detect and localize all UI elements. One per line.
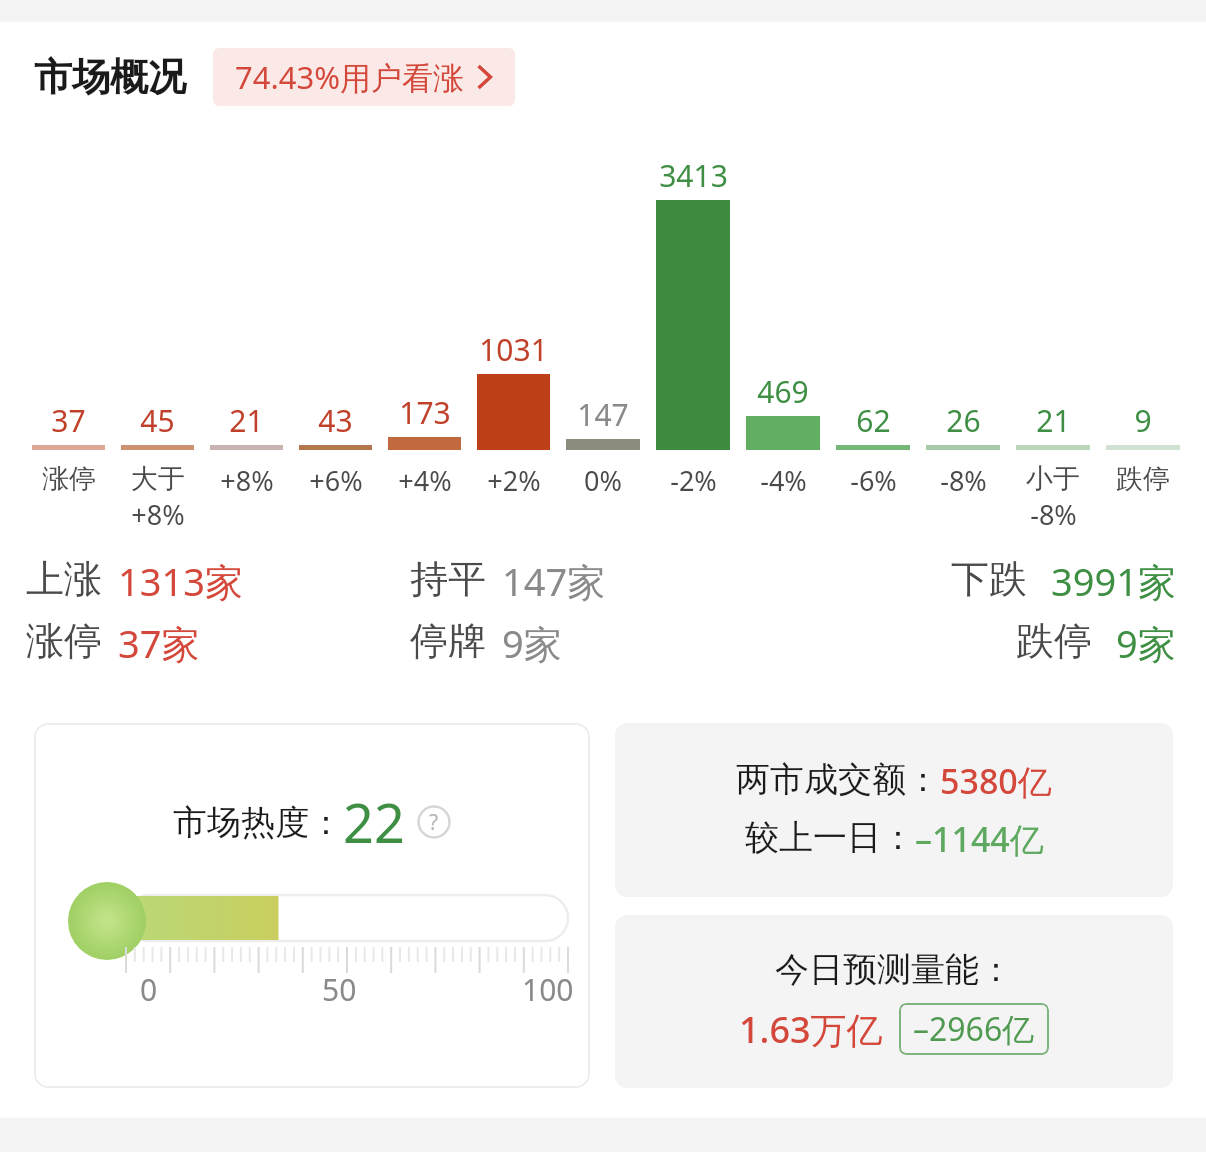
staticText: 上涨 xyxy=(26,555,102,603)
staticText: 9家 xyxy=(502,617,562,669)
staticText: 21 xyxy=(1036,400,1071,441)
staticText: 74.43%用户看涨 xyxy=(235,56,464,98)
button[interactable]: 两市成交额： xyxy=(615,723,1173,897)
staticText: +6% xyxy=(309,462,363,499)
staticText: 市场热度： xyxy=(173,801,343,844)
staticText: 涨停 xyxy=(26,617,102,665)
staticText: -8% xyxy=(1030,496,1077,533)
staticText: 今日预测量能： xyxy=(775,948,1013,991)
staticText: 小于 xyxy=(1026,462,1080,496)
staticText: 45 xyxy=(140,400,175,441)
staticText: 市场概况 xyxy=(34,53,186,101)
staticText: 100 xyxy=(522,969,574,1010)
staticText: 50 xyxy=(322,969,357,1010)
staticText: 3413 xyxy=(659,155,728,196)
staticText: +4% xyxy=(398,462,452,499)
staticText: 下跌 xyxy=(951,555,1027,603)
staticText: 43 xyxy=(318,400,353,441)
staticText: 停牌 xyxy=(410,617,486,665)
staticText: 两市成交额： xyxy=(736,758,940,801)
staticText: +8% xyxy=(131,496,185,533)
staticText: 37 xyxy=(51,400,86,441)
staticText: 持平 xyxy=(410,555,486,603)
staticText: -2% xyxy=(670,462,717,499)
staticText: 3991家 xyxy=(1051,555,1176,607)
staticText: 0% xyxy=(584,462,622,499)
staticText: 1031 xyxy=(479,329,548,370)
staticText: 26 xyxy=(946,400,981,441)
button[interactable]: 市场热度： xyxy=(34,723,590,1088)
staticText: 1.63万亿 xyxy=(739,1005,883,1054)
staticText: 22 xyxy=(343,785,405,859)
staticText: +8% xyxy=(220,462,274,499)
staticText: 大于 xyxy=(131,462,185,496)
staticText: 跌停 xyxy=(1016,617,1092,665)
staticText: +2% xyxy=(487,462,541,499)
staticText: 62 xyxy=(856,400,891,441)
staticText: –2966亿 xyxy=(913,1007,1035,1051)
staticText: 173 xyxy=(399,392,451,433)
staticText: -6% xyxy=(850,462,897,499)
staticText: 469 xyxy=(757,371,809,412)
staticText: 0 xyxy=(140,969,158,1010)
button[interactable]: 今日预测量能： xyxy=(615,915,1173,1088)
staticText: 1313家 xyxy=(118,555,243,607)
staticText: -4% xyxy=(760,462,807,499)
staticText: 5380亿 xyxy=(940,758,1052,804)
staticText: 较上一日： xyxy=(745,816,915,859)
staticText: 21 xyxy=(229,400,264,441)
staticText: 147 xyxy=(577,394,629,435)
staticText: 涨停 xyxy=(42,462,96,496)
button[interactable]: 74.43%用户看涨 xyxy=(213,48,515,106)
staticText: 37家 xyxy=(118,617,200,669)
staticText: –1144亿 xyxy=(915,816,1044,862)
staticText: 9家 xyxy=(1116,617,1176,669)
staticText: ? xyxy=(429,808,439,837)
staticText: 9 xyxy=(1134,400,1152,441)
staticText: 跌停 xyxy=(1116,462,1170,496)
button[interactable]: 帮助 xyxy=(417,805,451,839)
staticText: -8% xyxy=(940,462,987,499)
staticText: 147家 xyxy=(502,555,606,607)
